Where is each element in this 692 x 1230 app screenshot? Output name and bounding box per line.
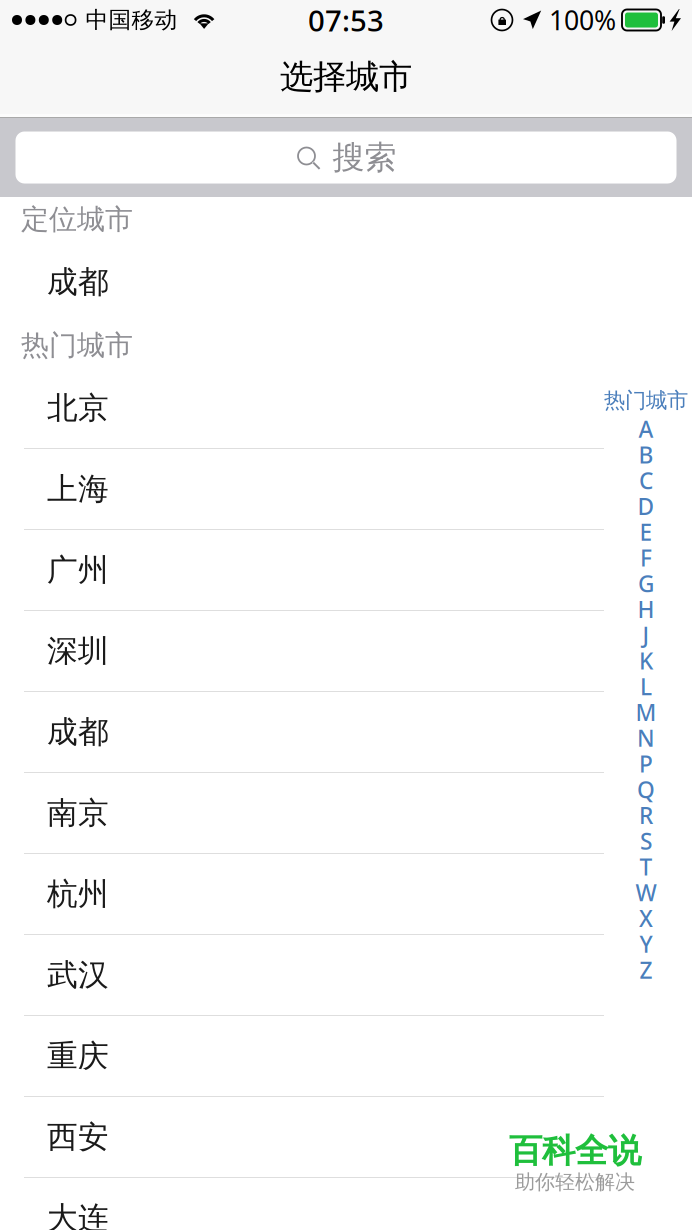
staticText: A (638, 414, 653, 444)
staticText: R (639, 800, 653, 830)
button[interactable]: M (600, 699, 692, 725)
button[interactable]: 上海 (0, 449, 692, 530)
staticText: 搜索 (332, 138, 396, 177)
staticText: 100% (549, 2, 616, 38)
button[interactable]: N (600, 725, 692, 751)
staticText: L (640, 671, 652, 701)
staticText: 热门城市 (21, 328, 133, 363)
staticText: 07:53 (308, 0, 384, 39)
staticText: 深圳 (47, 632, 109, 670)
button[interactable]: J (600, 622, 692, 648)
staticText: B (638, 440, 653, 470)
staticText: 热门城市 (604, 387, 688, 414)
staticText: 成都 (47, 263, 109, 301)
button[interactable]: T (600, 854, 692, 880)
button[interactable]: H (600, 596, 692, 622)
staticText: G (638, 568, 654, 598)
staticText: 杭州 (47, 875, 109, 913)
button[interactable]: E (600, 519, 692, 545)
button[interactable]: L (600, 674, 692, 699)
staticText: 重庆 (47, 1037, 109, 1075)
staticText: D (637, 491, 654, 521)
staticText: N (637, 723, 655, 753)
button[interactable]: K (600, 648, 692, 674)
staticText: Q (637, 774, 655, 805)
button[interactable]: Q (600, 777, 692, 802)
staticText: W (635, 877, 656, 908)
staticText: E (639, 517, 652, 547)
staticText: 定位城市 (21, 202, 133, 237)
button[interactable]: G (600, 571, 692, 596)
staticText: 西安 (47, 1118, 109, 1156)
button[interactable]: 西安 (0, 1097, 692, 1178)
button[interactable]: 成都 (0, 692, 692, 773)
button[interactable]: 大连 (0, 1178, 692, 1230)
button[interactable]: Y (600, 931, 692, 957)
staticText: 中国移动 (86, 6, 178, 34)
staticText: 北京 (47, 389, 109, 427)
staticText: T (639, 852, 652, 882)
staticText: S (640, 826, 652, 856)
staticText: 上海 (47, 470, 109, 508)
button[interactable]: R (600, 802, 692, 828)
button[interactable]: 南京 (0, 773, 692, 854)
staticText: 助你轻松解决 (515, 1170, 635, 1194)
button[interactable]: 热门城市 (600, 385, 692, 416)
staticText: 百科全说 (509, 1130, 641, 1171)
button[interactable]: F (600, 545, 692, 571)
staticText: P (639, 749, 653, 779)
staticText: C (639, 465, 653, 495)
button[interactable]: 北京 (0, 368, 692, 449)
button[interactable]: 广州 (0, 530, 692, 611)
button[interactable]: P (600, 751, 692, 777)
button[interactable]: X (600, 905, 692, 931)
button[interactable]: B (600, 442, 692, 468)
staticText: Z (639, 955, 652, 985)
staticText: X (639, 903, 653, 933)
button[interactable]: 武汉 (0, 935, 692, 1016)
button[interactable]: A (600, 416, 692, 442)
staticText: 武汉 (47, 956, 109, 994)
staticText: 选择城市 (280, 56, 412, 97)
button[interactable]: S (600, 828, 692, 854)
staticText: 南京 (47, 794, 109, 832)
staticText: F (640, 543, 652, 573)
staticText: 广州 (47, 551, 109, 589)
staticText: M (635, 697, 656, 727)
staticText: 成都 (47, 713, 109, 751)
button[interactable]: Z (600, 957, 692, 983)
button[interactable]: 重庆 (0, 1016, 692, 1097)
staticText: H (637, 594, 654, 624)
button[interactable]: W (600, 880, 692, 905)
staticText: J (642, 620, 649, 650)
button[interactable]: D (600, 493, 692, 519)
button[interactable]: 搜索 (15, 131, 676, 183)
button[interactable]: 杭州 (0, 854, 692, 935)
staticText: K (639, 646, 653, 676)
button[interactable]: C (600, 467, 692, 493)
button[interactable]: 深圳 (0, 611, 692, 692)
button[interactable]: 成都 (0, 242, 692, 323)
staticText: 大连 (47, 1199, 109, 1230)
staticText: Y (639, 929, 652, 959)
